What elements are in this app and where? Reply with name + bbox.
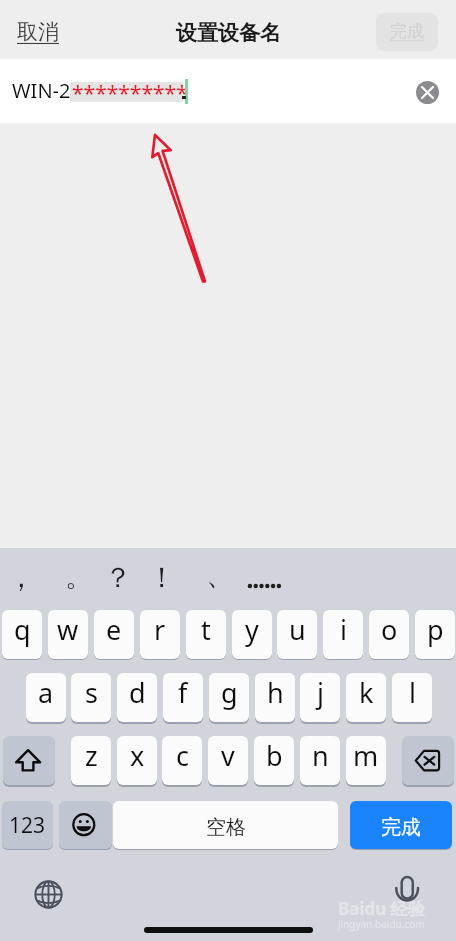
button[interactable]: Backspace [402,736,454,785]
staticText: y [245,611,259,648]
staticText: l [409,674,416,711]
staticText: g [221,674,238,711]
button[interactable]: c [162,736,202,785]
staticText: r [154,611,166,648]
button[interactable]: o [369,610,409,659]
button[interactable]: Change keyboard language [33,879,64,910]
button[interactable]: 。 [51,552,95,596]
staticText: 完成 [381,815,421,840]
button[interactable]: e [94,610,134,659]
staticText: 。 [65,559,93,594]
staticText: s [85,674,98,711]
staticText: v [221,737,235,774]
button[interactable]: q [2,610,42,659]
staticText: q [14,611,31,648]
staticText: w [57,611,79,648]
staticText: jingyan.baidu.com [338,917,425,931]
staticText: 设置设备名 [176,20,281,46]
button[interactable]: b [254,736,294,785]
button[interactable]: Ellipsis [240,558,288,592]
staticText: t [201,611,211,648]
button[interactable]: 123 [2,801,53,849]
button[interactable]: u [277,610,317,659]
staticText: a [38,674,54,711]
button[interactable]: Emoji keyboard [59,801,112,849]
button[interactable]: 完成 [350,801,452,849]
button[interactable]: Clear text [416,81,439,104]
staticText: j [317,674,324,711]
staticText: i [340,611,347,648]
button[interactable]: p [415,610,455,659]
button[interactable]: Voice input [392,872,424,910]
button[interactable]: r [140,610,180,659]
button[interactable]: ？ [90,552,134,596]
staticText: u [289,611,306,648]
staticText: h [267,674,284,711]
button[interactable]: i [323,610,363,659]
staticText: n [312,737,329,774]
staticText: ， [7,560,35,595]
staticText: Baidu 经验 [338,897,425,920]
button[interactable]: g [209,673,249,722]
button[interactable]: k [346,673,386,722]
button[interactable]: a [26,673,66,722]
button[interactable]: x [117,736,157,785]
staticText: 123 [9,811,46,840]
staticText: k [359,674,374,711]
button[interactable]: 完成 [376,13,438,51]
button[interactable]: ！ [134,552,178,596]
button[interactable]: f [163,673,203,722]
button[interactable]: Shift [3,736,55,785]
staticText: z [85,737,98,774]
button[interactable]: 空格 [113,801,338,849]
staticText: e [106,611,122,648]
button[interactable]: m [346,736,386,785]
button[interactable]: y [232,610,272,659]
staticText: WIN-2 [12,77,71,104]
staticText: 取消 [17,19,59,45]
button[interactable]: n [300,736,340,785]
button[interactable]: ， [0,552,37,596]
button[interactable]: 、 [192,552,236,596]
staticText: x [130,737,145,774]
staticText: ？ [104,560,132,595]
button[interactable]: j [300,673,340,722]
staticText: ********** [72,79,188,108]
button[interactable]: v [208,736,248,785]
button[interactable]: h [255,673,295,722]
staticText: 空格 [206,815,246,840]
staticText: 、 [206,557,234,592]
staticText: m [353,737,379,774]
button[interactable]: z [71,736,111,785]
button[interactable]: s [71,673,111,722]
other: Annotation arrow [0,0,456,941]
button[interactable]: w [48,610,88,659]
staticText: ！ [148,560,176,595]
staticText: o [381,611,398,648]
staticText: p [427,611,444,648]
staticText: c [176,737,189,774]
button[interactable]: d [117,673,157,722]
staticText: 完成 [390,21,424,42]
staticText: d [129,674,146,711]
button[interactable]: t [186,610,226,659]
staticText: b [266,737,283,774]
button[interactable]: 取消 [17,19,59,45]
staticText: f [178,674,188,711]
button[interactable]: l [392,673,432,722]
